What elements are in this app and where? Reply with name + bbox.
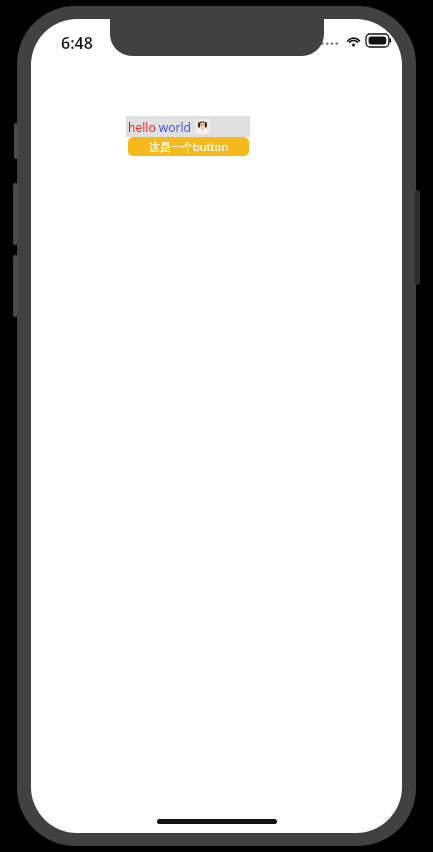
staticText: 这是一个button	[149, 139, 228, 154]
staticText: hello world	[128, 119, 195, 135]
staticText: 6:48	[61, 32, 93, 54]
other: Volume down	[13, 255, 18, 317]
button[interactable]: 这是一个button	[128, 137, 249, 156]
other: Volume up	[13, 183, 18, 245]
other: Mute switch	[14, 123, 18, 159]
